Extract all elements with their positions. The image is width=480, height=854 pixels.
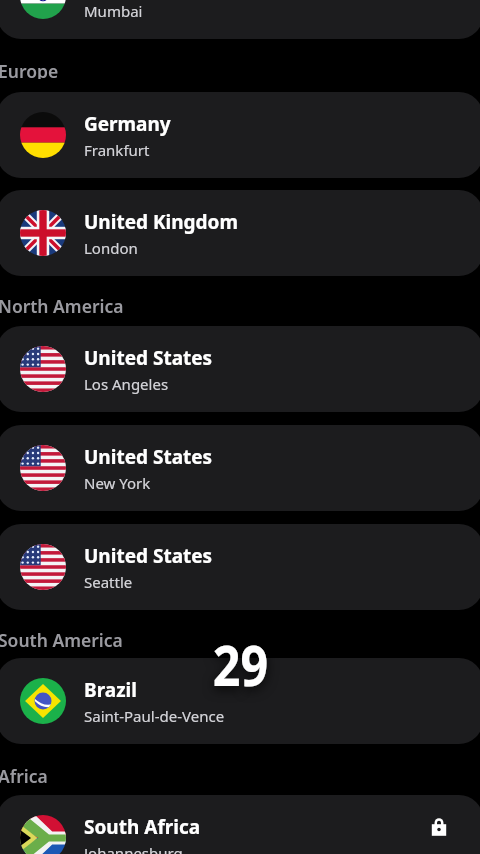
staticText: 29 [213,627,268,702]
staticText: South Africa [84,814,201,840]
staticText: United States [84,345,213,371]
staticText: London [84,238,138,258]
staticText: Europe [0,59,59,79]
staticText: United Kingdom [84,209,238,235]
button[interactable]: India [0,0,480,39]
button[interactable]: South Africa [0,795,480,854]
other: Locked [431,817,447,837]
staticText: South America [0,628,123,648]
staticText: Mumbai [84,1,143,21]
button[interactable]: United States [0,425,480,511]
staticText: United States [84,444,213,470]
button[interactable]: Brazil [0,658,480,744]
button[interactable]: United Kingdom [0,190,480,276]
staticText: Africa [0,764,48,784]
staticText: Johannesburg [84,843,183,854]
staticText: Frankfurt [84,140,150,160]
staticText: North America [0,294,124,314]
staticText: Saint-Paul-de-Vence [84,706,225,726]
staticText: New York [84,473,151,493]
button[interactable]: Germany [0,92,480,178]
staticText: Brazil [84,677,137,703]
staticText: United States [84,543,213,569]
staticText: Germany [84,111,171,137]
staticText: Los Angeles [84,374,169,394]
button[interactable]: United States [0,524,480,610]
staticText: Seattle [84,572,133,592]
button[interactable]: United States [0,326,480,412]
